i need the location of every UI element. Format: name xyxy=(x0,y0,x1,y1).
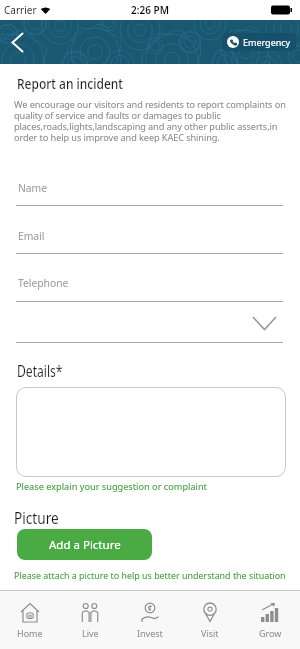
button[interactable]: Invest xyxy=(120,591,180,639)
staticText: Invest xyxy=(137,627,163,639)
staticText: Emergency xyxy=(243,36,291,48)
button[interactable]: Live xyxy=(60,591,120,639)
staticText: Details* xyxy=(17,360,63,381)
button[interactable] xyxy=(16,312,283,343)
button[interactable] xyxy=(16,387,286,477)
staticText: 2:26 PM xyxy=(131,3,169,17)
button[interactable] xyxy=(16,176,283,206)
staticText: Email xyxy=(18,229,45,243)
staticText: Please attach a picture to help us bette… xyxy=(14,569,286,581)
staticText: Name xyxy=(18,181,48,195)
staticText: Visit xyxy=(201,627,219,639)
button[interactable]: Home xyxy=(0,591,60,639)
staticText: Grow xyxy=(259,627,282,639)
staticText: Add a Picture xyxy=(49,537,121,553)
button[interactable]: Add a Picture xyxy=(17,529,152,560)
staticText: Telephone xyxy=(18,276,69,290)
staticText: We encourage our visitors and residents … xyxy=(14,98,286,143)
button[interactable]: Emergency xyxy=(222,33,296,51)
button[interactable] xyxy=(0,20,34,64)
button[interactable]: Visit xyxy=(180,591,240,639)
button[interactable] xyxy=(16,272,283,302)
staticText: Report an incident xyxy=(17,73,123,93)
staticText: Picture xyxy=(14,507,59,528)
button[interactable] xyxy=(16,224,283,254)
staticText: Please explain your suggestion or compla… xyxy=(16,480,207,493)
staticText: Carrier xyxy=(4,3,37,17)
button[interactable]: Grow xyxy=(240,591,300,639)
staticText: Live xyxy=(82,627,99,639)
staticText: Home xyxy=(17,627,43,639)
